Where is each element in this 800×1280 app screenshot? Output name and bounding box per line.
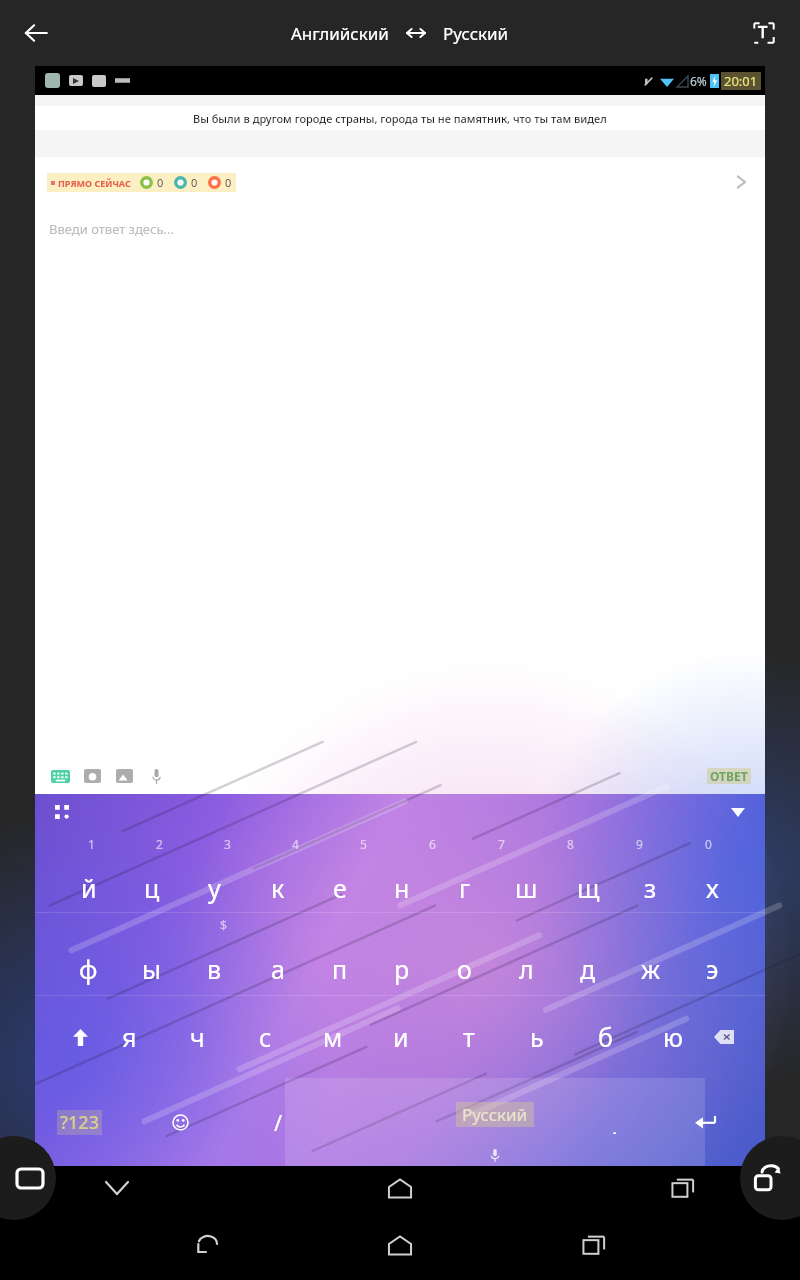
button[interactable]: ПРЯМО СЕЙЧАС <box>35 157 765 207</box>
button[interactable]: Backspace <box>707 1020 741 1054</box>
staticText: и <box>393 1020 409 1054</box>
button[interactable]: Русский <box>443 22 509 45</box>
staticText: г <box>459 871 470 905</box>
button[interactable]: й <box>57 868 120 908</box>
button[interactable]: / <box>263 1107 293 1137</box>
staticText: 0 <box>225 175 232 190</box>
button[interactable]: ф <box>57 949 120 989</box>
button[interactable]: з <box>619 868 681 908</box>
button[interactable]: в <box>183 949 246 989</box>
button[interactable]: ОТВЕТ <box>710 768 748 784</box>
button[interactable]: у <box>183 868 246 908</box>
staticText: а <box>271 952 285 986</box>
button[interactable]: Вы были в другом городе страны, города т… <box>35 106 765 130</box>
staticText: . <box>612 1114 618 1134</box>
button[interactable]: Home <box>374 1219 426 1271</box>
button[interactable]: щ <box>557 868 619 908</box>
button[interactable]: Gallery <box>111 763 137 789</box>
staticText: х <box>706 871 719 905</box>
staticText: й <box>81 871 97 905</box>
button[interactable]: Hide keyboard <box>95 1166 139 1210</box>
button[interactable]: Space <box>285 1078 705 1166</box>
button[interactable]: ц <box>120 868 183 908</box>
button[interactable]: е <box>309 868 371 908</box>
button[interactable]: с <box>231 996 299 1078</box>
button[interactable]: п <box>309 949 371 989</box>
staticText: ь <box>530 1020 544 1054</box>
button[interactable]: ш <box>495 868 557 908</box>
staticText: к <box>271 871 285 905</box>
button[interactable]: м <box>299 996 367 1078</box>
button[interactable]: и <box>367 996 435 1078</box>
button[interactable]: Camera <box>79 763 105 789</box>
staticText: ю <box>663 1020 683 1054</box>
staticText: е <box>333 871 347 905</box>
staticText: з <box>644 871 657 905</box>
staticText: я <box>122 1020 137 1054</box>
button[interactable]: л <box>495 949 557 989</box>
staticText: ОТВЕТ <box>710 768 748 784</box>
button[interactable]: я <box>95 996 163 1078</box>
button[interactable]: Recents <box>568 1219 620 1271</box>
staticText: ш <box>515 871 538 905</box>
staticText: 3 <box>224 836 231 852</box>
button[interactable]: Select text <box>740 9 788 57</box>
button[interactable]: Hide keyboard <box>725 799 751 825</box>
button[interactable]: Keyboard <box>47 763 73 789</box>
button[interactable]: д <box>557 949 619 989</box>
staticText: 1 <box>88 836 95 852</box>
button[interactable]: т <box>435 996 503 1078</box>
button[interactable]: а <box>246 949 309 989</box>
staticText: 0 <box>191 175 198 190</box>
staticText: т <box>463 1020 475 1054</box>
staticText: 7 <box>498 836 505 852</box>
staticText: ?123 <box>60 1110 99 1135</box>
button[interactable]: ь <box>503 996 571 1078</box>
button[interactable]: Screenshot <box>0 1136 56 1220</box>
button[interactable]: н <box>371 868 433 908</box>
staticText: ф <box>79 952 98 986</box>
staticText: н <box>394 871 410 905</box>
button[interactable]: Emoji <box>165 1107 195 1137</box>
staticText: Английский <box>291 22 389 45</box>
button[interactable]: Английский <box>291 22 389 45</box>
button[interactable]: р <box>371 949 433 989</box>
staticText: щ <box>577 871 600 905</box>
button[interactable]: Swap languages <box>403 20 429 46</box>
staticText: Русский <box>443 22 509 45</box>
button[interactable]: э <box>681 949 743 989</box>
staticText: Русский <box>462 1103 528 1126</box>
staticText: ц <box>144 871 160 905</box>
button[interactable]: ж <box>619 949 681 989</box>
button[interactable]: Enter <box>687 1104 723 1140</box>
button[interactable]: Keyboard menu <box>49 799 75 825</box>
button[interactable]: Voice input <box>143 763 169 789</box>
staticText: э <box>706 952 719 986</box>
staticText: ж <box>641 952 660 986</box>
staticText: 8 <box>567 836 574 852</box>
staticText: о <box>457 952 472 986</box>
button[interactable]: ю <box>639 996 707 1078</box>
button[interactable]: Shift <box>63 1020 97 1054</box>
button[interactable]: ч <box>163 996 231 1078</box>
button[interactable]: Back <box>180 1219 232 1271</box>
staticText: 6% <box>690 73 707 89</box>
button[interactable]: Rotate screenshot <box>740 1136 800 1220</box>
button[interactable]: ?123 <box>60 1110 99 1135</box>
staticText: 0 <box>157 175 164 190</box>
button[interactable]: Home <box>378 1166 422 1210</box>
staticText: в <box>207 952 222 986</box>
button[interactable]: Recents <box>661 1166 705 1210</box>
button[interactable]: х <box>681 868 743 908</box>
staticText: д <box>580 952 596 986</box>
button[interactable]: Back <box>12 9 60 57</box>
button[interactable]: о <box>433 949 495 989</box>
button[interactable]: г <box>433 868 495 908</box>
button[interactable]: б <box>571 996 639 1078</box>
button[interactable]: Введи ответ здесь... <box>35 207 765 251</box>
button[interactable]: к <box>246 868 309 908</box>
staticText: л <box>519 952 534 986</box>
staticText: м <box>323 1020 343 1054</box>
button[interactable]: ы <box>120 949 183 989</box>
staticText: $ <box>220 917 227 933</box>
